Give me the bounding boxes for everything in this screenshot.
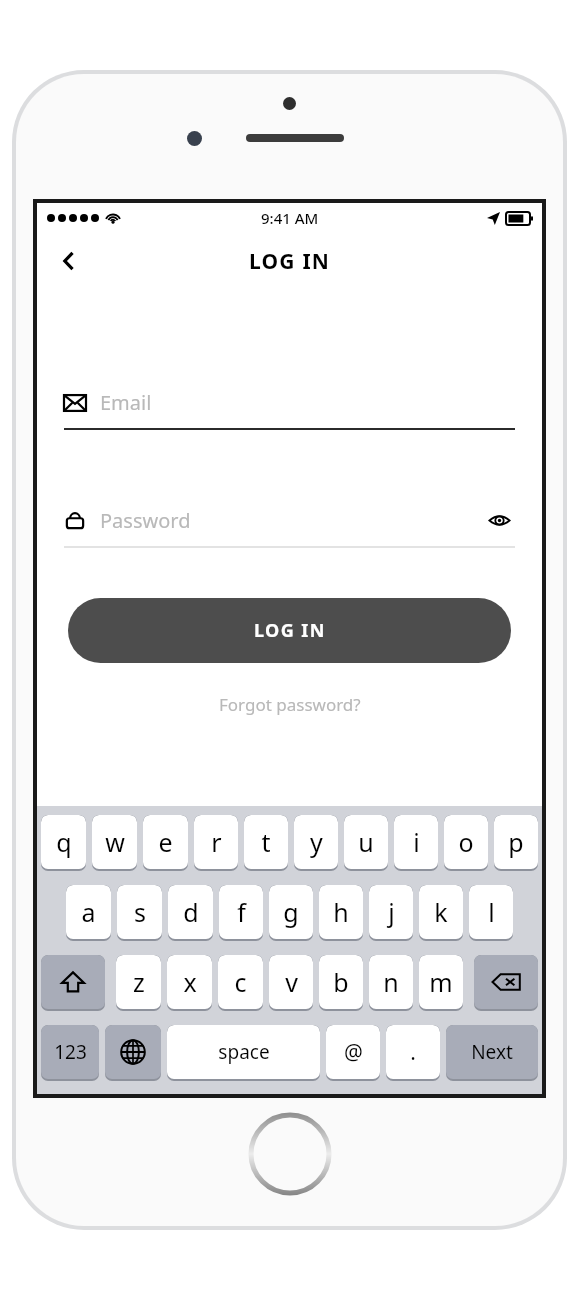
staticText: u xyxy=(358,825,374,859)
button[interactable]: o xyxy=(444,815,488,869)
button[interactable]: s xyxy=(117,885,162,939)
button[interactable]: Back xyxy=(47,239,91,283)
button[interactable]: u xyxy=(344,815,388,869)
button[interactable]: i xyxy=(394,815,438,869)
staticText: a xyxy=(81,895,96,929)
staticText: w xyxy=(105,825,125,859)
staticText: Next xyxy=(471,1039,513,1065)
button[interactable]: f xyxy=(219,885,263,939)
staticText: 123 xyxy=(54,1039,87,1065)
staticText: h xyxy=(333,895,349,929)
button[interactable]: z xyxy=(116,955,161,1009)
staticText: r xyxy=(211,825,222,859)
staticText: Email xyxy=(100,389,152,416)
button[interactable]: space xyxy=(167,1025,320,1079)
button[interactable]: Forgot password? xyxy=(207,687,373,722)
staticText: t xyxy=(261,825,271,859)
button[interactable]: x xyxy=(167,955,212,1009)
staticText: 9:41 AM xyxy=(261,208,319,228)
button[interactable]: a xyxy=(66,885,111,939)
button[interactable]: r xyxy=(194,815,238,869)
button[interactable]: Email xyxy=(64,389,515,430)
button[interactable]: d xyxy=(168,885,213,939)
staticText: m xyxy=(429,965,453,999)
staticText: z xyxy=(133,965,145,999)
staticText: Password xyxy=(100,507,191,534)
button[interactable]: l xyxy=(469,885,513,939)
button[interactable]: Show password xyxy=(483,504,515,536)
staticText: k xyxy=(434,895,448,929)
button[interactable]: Password xyxy=(64,504,515,548)
staticText: c xyxy=(234,965,247,999)
staticText: l xyxy=(488,895,495,929)
button[interactable]: q xyxy=(41,815,86,869)
staticText: @ xyxy=(344,1038,363,1067)
button[interactable]: LOG IN xyxy=(68,598,511,663)
staticText: g xyxy=(283,895,299,929)
button[interactable]: n xyxy=(369,955,413,1009)
staticText: o xyxy=(458,825,474,859)
button[interactable]: Change keyboard xyxy=(105,1025,161,1079)
staticText: p xyxy=(508,825,524,859)
button[interactable]: 123 xyxy=(41,1025,99,1079)
staticText: f xyxy=(237,895,246,929)
staticText: s xyxy=(134,895,146,929)
button[interactable]: Shift xyxy=(41,955,105,1009)
button[interactable]: k xyxy=(419,885,463,939)
button[interactable]: m xyxy=(419,955,463,1009)
button[interactable]: Next xyxy=(446,1025,538,1079)
button[interactable]: @ xyxy=(326,1025,380,1079)
staticText: LOG IN xyxy=(254,618,326,643)
staticText: space xyxy=(218,1039,270,1065)
button[interactable]: p xyxy=(494,815,538,869)
button[interactable]: g xyxy=(269,885,313,939)
staticText: d xyxy=(183,895,199,929)
staticText: e xyxy=(158,825,173,859)
button[interactable]: e xyxy=(143,815,188,869)
button[interactable]: . xyxy=(386,1025,440,1079)
staticText: v xyxy=(285,965,298,999)
button[interactable]: t xyxy=(244,815,288,869)
button[interactable]: j xyxy=(369,885,413,939)
staticText: LOG IN xyxy=(249,247,331,276)
staticText: Forgot password? xyxy=(219,693,361,716)
button[interactable]: c xyxy=(218,955,263,1009)
staticText: . xyxy=(410,1038,416,1067)
staticText: y xyxy=(310,825,323,859)
staticText: j xyxy=(388,895,395,929)
button[interactable]: v xyxy=(269,955,313,1009)
staticText: q xyxy=(56,825,72,859)
button[interactable]: b xyxy=(319,955,363,1009)
staticText: b xyxy=(333,965,349,999)
staticText: n xyxy=(383,965,399,999)
button[interactable]: w xyxy=(92,815,137,869)
button[interactable]: y xyxy=(294,815,338,869)
button[interactable]: Backspace xyxy=(474,955,538,1009)
button[interactable]: h xyxy=(319,885,363,939)
staticText: i xyxy=(413,825,420,859)
staticText: x xyxy=(183,965,197,999)
